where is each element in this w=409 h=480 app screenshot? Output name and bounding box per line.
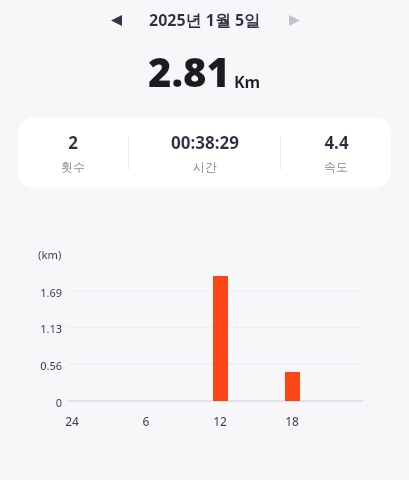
staticText: (km)	[38, 247, 62, 262]
staticText: 12	[200, 413, 240, 429]
staticText: 0.56	[18, 358, 62, 373]
staticText: 00:38:29	[171, 131, 239, 154]
staticText: 0	[18, 395, 62, 410]
staticText: 6	[126, 413, 166, 429]
staticText: 18	[272, 413, 312, 429]
staticText: 2.81	[148, 44, 230, 98]
button[interactable]: Previous day	[101, 5, 131, 35]
staticText: 24	[52, 413, 92, 429]
staticText: 횟수	[61, 159, 85, 174]
staticText: 1.13	[18, 321, 62, 336]
staticText: 속도	[324, 159, 348, 174]
staticText: 1.69	[18, 285, 62, 300]
staticText: 4.4	[324, 131, 349, 154]
button[interactable]: Next day	[279, 5, 309, 35]
staticText: Km	[234, 71, 261, 93]
staticText: 2	[68, 131, 78, 154]
button[interactable]: 2	[18, 117, 391, 188]
staticText: 2025년 1월 5일	[149, 9, 261, 31]
staticText: 시간	[193, 159, 217, 174]
